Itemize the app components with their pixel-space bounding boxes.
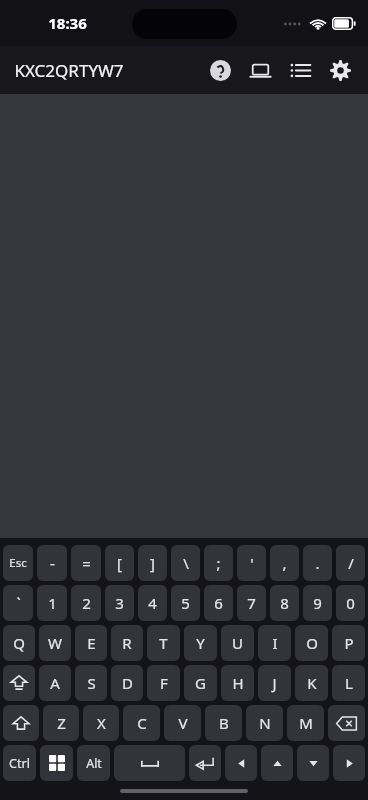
staticText: S <box>87 673 96 693</box>
button[interactable]: T <box>147 625 180 661</box>
button[interactable]: K <box>295 665 328 701</box>
button[interactable]: space <box>114 745 185 781</box>
button[interactable]: C <box>123 705 160 741</box>
staticText: , <box>282 553 287 573</box>
staticText: A <box>50 673 60 693</box>
button[interactable]: [ <box>105 545 134 581</box>
button[interactable]: R <box>111 625 143 661</box>
button[interactable]: 5 <box>171 585 200 621</box>
staticText: R <box>122 633 132 653</box>
button[interactable]: L <box>332 665 365 701</box>
button[interactable]: ` <box>3 585 33 621</box>
staticText: P <box>344 633 354 653</box>
button[interactable]: Open on computer <box>240 50 280 90</box>
button[interactable]: , <box>270 545 299 581</box>
staticText: 8 <box>280 593 289 613</box>
button[interactable]: down <box>297 745 329 781</box>
button[interactable]: E <box>75 625 107 661</box>
button[interactable]: Q <box>3 625 35 661</box>
staticText: W <box>48 633 62 653</box>
button[interactable]: Alt <box>77 745 110 781</box>
staticText: 9 <box>313 593 322 613</box>
button[interactable]: 8 <box>270 585 299 621</box>
button[interactable]: / <box>336 545 365 581</box>
button[interactable]: M <box>287 705 324 741</box>
button[interactable]: ; <box>204 545 233 581</box>
button[interactable]: shift <box>3 705 39 741</box>
staticText: J <box>272 673 277 693</box>
button[interactable]: win <box>40 745 73 781</box>
button[interactable]: Y <box>184 625 217 661</box>
button[interactable]: Settings <box>320 50 360 90</box>
staticText: 0 <box>346 593 355 613</box>
staticText: M <box>299 713 313 733</box>
button[interactable]: 9 <box>303 585 332 621</box>
button[interactable]: Z <box>43 705 79 741</box>
button[interactable]: 1 <box>37 585 67 621</box>
button[interactable]: right <box>333 745 365 781</box>
button[interactable]: bksp <box>328 705 365 741</box>
button[interactable]: B <box>205 705 242 741</box>
button[interactable]: Help <box>200 50 240 90</box>
staticText: KXC2QRTYW7 <box>14 59 124 82</box>
button[interactable]: - <box>37 545 67 581</box>
button[interactable]: enter <box>189 745 221 781</box>
staticText: Z <box>57 713 66 733</box>
staticText: H <box>232 673 244 693</box>
button[interactable]: J <box>258 665 291 701</box>
staticText: 6 <box>214 593 223 613</box>
button[interactable]: F <box>147 665 180 701</box>
staticText: T <box>159 633 168 653</box>
button[interactable]: up <box>261 745 293 781</box>
staticText: [ <box>117 553 122 573</box>
button[interactable]: S <box>75 665 107 701</box>
staticText: N <box>259 713 271 733</box>
button[interactable]: left <box>225 745 257 781</box>
button[interactable]: 4 <box>138 585 167 621</box>
button[interactable]: Sessions list <box>280 50 320 90</box>
button[interactable]: O <box>295 625 328 661</box>
staticText: I <box>272 633 278 653</box>
button[interactable]: D <box>111 665 143 701</box>
button[interactable]: 0 <box>336 585 365 621</box>
button[interactable]: A <box>39 665 71 701</box>
button[interactable]: Esc <box>3 545 33 581</box>
staticText: 1 <box>48 593 57 613</box>
staticText: E <box>87 633 96 653</box>
staticText: ] <box>150 553 155 573</box>
button[interactable]: G <box>184 665 217 701</box>
staticText: Alt <box>86 755 102 772</box>
staticText: 18:36 <box>48 13 87 33</box>
button[interactable]: ' <box>237 545 266 581</box>
button[interactable]: P <box>332 625 365 661</box>
button[interactable]: caps <box>3 665 35 701</box>
staticText: V <box>178 713 188 733</box>
button[interactable]: 2 <box>71 585 101 621</box>
button[interactable]: N <box>246 705 283 741</box>
button[interactable]: 3 <box>105 585 134 621</box>
button[interactable]: ] <box>138 545 167 581</box>
staticText: C <box>137 713 147 733</box>
staticText: 7 <box>247 593 256 613</box>
button[interactable]: U <box>221 625 254 661</box>
button[interactable]: V <box>164 705 201 741</box>
staticText: F <box>160 673 168 693</box>
staticText: 3 <box>115 593 124 613</box>
button[interactable]: X <box>83 705 119 741</box>
staticText: = <box>82 553 91 573</box>
staticText: 2 <box>82 593 91 613</box>
staticText: ` <box>16 593 21 613</box>
button[interactable]: . <box>303 545 332 581</box>
staticText: Y <box>196 633 205 653</box>
staticText: O <box>306 633 318 653</box>
button[interactable]: Ctrl <box>3 745 36 781</box>
button[interactable]: W <box>39 625 71 661</box>
staticText: Ctrl <box>9 755 30 772</box>
button[interactable]: I <box>258 625 291 661</box>
staticText: ' <box>250 553 254 573</box>
button[interactable]: \ <box>171 545 200 581</box>
button[interactable]: 7 <box>237 585 266 621</box>
button[interactable]: = <box>71 545 101 581</box>
button[interactable]: 6 <box>204 585 233 621</box>
button[interactable]: H <box>221 665 254 701</box>
